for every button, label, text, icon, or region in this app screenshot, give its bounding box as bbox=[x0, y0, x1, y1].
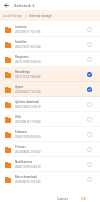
button[interactable]: recovery bbox=[0, 22, 100, 37]
staticText: 2020/11/09 22:43:10 bbox=[15, 165, 41, 169]
button[interactable]: OK bbox=[78, 195, 89, 202]
staticText: Music download bbox=[15, 175, 37, 179]
staticText: Cancel bbox=[57, 196, 68, 201]
staticText: 2020/11/09 22:43:10 bbox=[15, 135, 41, 139]
staticText: 2021/11/09 22:43:10 bbox=[15, 60, 41, 64]
staticText: Internal storage bbox=[29, 14, 52, 18]
button[interactable]: Subtitles bbox=[0, 37, 100, 52]
button[interactable]: Select item bbox=[85, 175, 94, 184]
staticText: Qsync bbox=[15, 85, 24, 89]
button[interactable]: Ufile bbox=[0, 112, 100, 127]
staticText: Ufile bbox=[15, 115, 22, 119]
staticText: 2023/06/12 10:31:02 bbox=[15, 180, 41, 184]
staticText: Local Storage bbox=[3, 14, 23, 18]
staticText: OK bbox=[81, 196, 86, 201]
button[interactable]: Select item bbox=[85, 160, 94, 169]
button[interactable]: Select item bbox=[85, 115, 94, 124]
staticText: Ringtones bbox=[15, 55, 29, 59]
staticText: 2023/06/27 13:13:20 bbox=[15, 90, 41, 94]
staticText: Subtitles bbox=[15, 40, 27, 44]
button[interactable]: Qphoto download bbox=[0, 97, 100, 112]
button[interactable]: Ringtones bbox=[0, 52, 100, 67]
button[interactable]: Notifications bbox=[0, 157, 100, 172]
staticText: 2021/05/11 15:11:05 bbox=[15, 30, 41, 34]
button[interactable]: Qsync bbox=[0, 82, 100, 97]
button[interactable]: Local Storage bbox=[3, 14, 23, 18]
staticText: Selected: 2 bbox=[14, 3, 35, 8]
button[interactable]: Select item bbox=[85, 25, 94, 34]
staticText: Podcasts bbox=[15, 130, 27, 134]
button[interactable]: Internal storage bbox=[29, 14, 52, 18]
button[interactable]: Select item bbox=[85, 85, 94, 94]
staticText: 2022/06/16 17:19:02 bbox=[15, 120, 41, 124]
button[interactable]: Select item bbox=[85, 70, 94, 79]
staticText: Recordings bbox=[15, 70, 30, 74]
staticText: Qphoto download bbox=[15, 100, 40, 104]
button[interactable]: Select item bbox=[85, 130, 94, 139]
staticText: Pictures bbox=[15, 145, 26, 149]
staticText: 2021/11/23 18:20:46 bbox=[15, 75, 41, 79]
staticText: recovery bbox=[15, 25, 27, 29]
button[interactable]: Podcasts bbox=[0, 127, 100, 142]
button[interactable]: Music download bbox=[0, 172, 100, 187]
staticText: > bbox=[25, 14, 27, 18]
button[interactable]: Select item bbox=[85, 145, 94, 154]
staticText: 2022/12/31 10:31:44 bbox=[15, 45, 41, 49]
button[interactable]: Back bbox=[0, 0, 12, 10]
button[interactable]: Select item bbox=[85, 100, 94, 109]
staticText: Notifications bbox=[15, 160, 33, 164]
button[interactable]: Cancel bbox=[54, 195, 71, 202]
button[interactable]: Select item bbox=[85, 55, 94, 64]
button[interactable]: Select item bbox=[85, 40, 94, 49]
staticText: 2023/08/04 21:35:52 bbox=[15, 150, 41, 154]
button[interactable]: Recordings bbox=[0, 67, 100, 82]
staticText: 2022/10/03 15:36:10 bbox=[15, 105, 41, 109]
button[interactable]: Pictures bbox=[0, 142, 100, 157]
